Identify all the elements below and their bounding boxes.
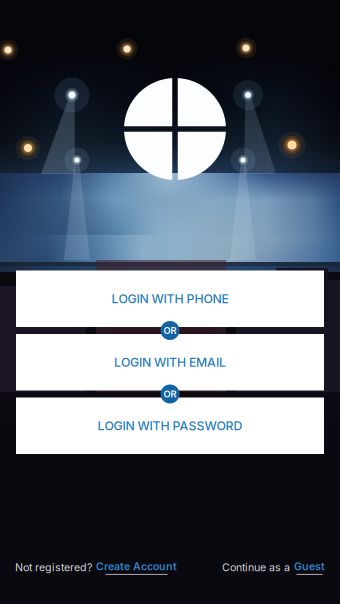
- staticText: Guest: [294, 560, 325, 573]
- staticText: LOGIN WITH EMAIL: [114, 355, 226, 370]
- staticText: Not registered?: [15, 561, 92, 574]
- button[interactable]: LOGIN WITH PASSWORD: [16, 397, 324, 454]
- staticText: Continue as a: [222, 561, 290, 574]
- staticText: LOGIN WITH PHONE: [111, 291, 228, 306]
- staticText: OR: [163, 325, 176, 336]
- button[interactable]: LOGIN WITH PHONE: [16, 270, 324, 327]
- button[interactable]: Not registered?: [15, 556, 177, 579]
- staticText: LOGIN WITH PASSWORD: [97, 418, 242, 433]
- button[interactable]: Continue as a: [222, 556, 325, 579]
- staticText: Create Account: [96, 560, 177, 573]
- button[interactable]: LOGIN WITH EMAIL: [16, 334, 324, 390]
- staticText: OR: [163, 388, 176, 400]
